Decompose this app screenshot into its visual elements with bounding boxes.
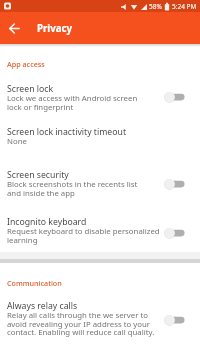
staticText: Always relay calls — [7, 300, 78, 312]
staticText: Screen lock inactivity timeout — [7, 126, 127, 138]
staticText: 5:24 PM — [172, 2, 197, 11]
button[interactable] — [5, 19, 24, 38]
button[interactable]: Screen lock — [0, 83, 200, 117]
staticText: None — [7, 136, 27, 147]
staticText: Incognito keyboard — [7, 216, 87, 228]
staticText: 58% — [149, 2, 162, 11]
staticText: Communication — [7, 278, 62, 288]
staticText: Request keyboard to disable personalized… — [7, 226, 160, 245]
staticText: Privacy — [37, 22, 73, 35]
staticText: App access — [7, 59, 45, 69]
button[interactable]: Always relay calls — [0, 300, 200, 342]
staticText: Screen security — [7, 169, 69, 181]
staticText: Lock we access with Android screen lock … — [7, 93, 138, 112]
button[interactable]: Communication — [7, 278, 62, 288]
staticText: Block screenshots in the recents list an… — [7, 179, 138, 198]
button[interactable]: Incognito keyboard — [0, 216, 200, 250]
button[interactable]: Screen lock inactivity timeout — [0, 126, 200, 152]
button[interactable]: Screen security — [0, 169, 200, 203]
button[interactable]: App access — [7, 59, 45, 69]
staticText: Relay all calls through the we server to… — [7, 310, 155, 337]
staticText: Screen lock — [7, 83, 54, 95]
